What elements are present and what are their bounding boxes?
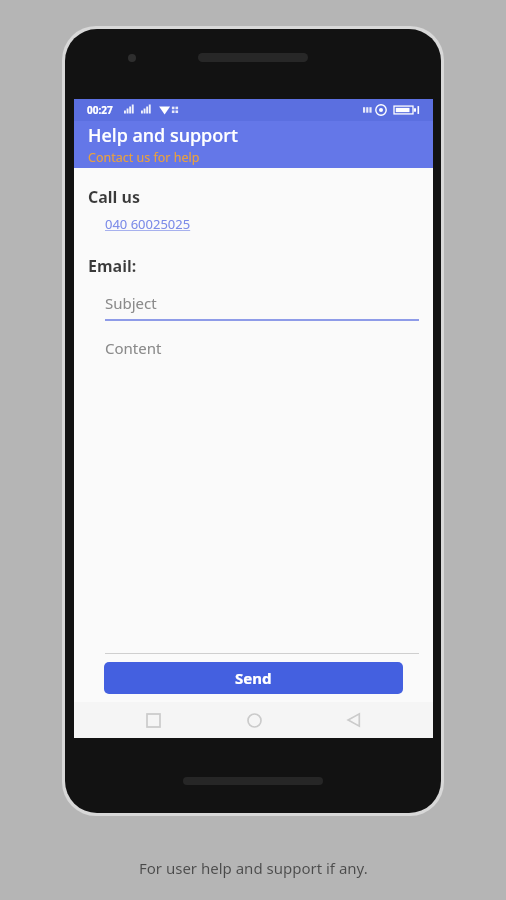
- button[interactable]: Content: [105, 338, 419, 653]
- button[interactable]: Subject: [105, 293, 419, 321]
- button[interactable]: Send: [104, 662, 403, 694]
- button[interactable]: Back: [332, 702, 376, 738]
- staticText: Email:: [88, 255, 137, 277]
- staticText: Subject: [105, 293, 157, 313]
- staticText: Help and support: [88, 123, 238, 148]
- button[interactable]: 040 60025025: [105, 215, 191, 233]
- staticText: 040 60025025: [105, 215, 191, 233]
- staticText: Send: [235, 668, 272, 688]
- button[interactable]: Home: [232, 702, 276, 738]
- staticText: For user help and support if any.: [139, 858, 368, 878]
- staticText: Content: [105, 338, 162, 358]
- staticText: Call us: [88, 186, 140, 208]
- staticText: 00:27: [87, 103, 113, 117]
- staticText: Contact us for help: [88, 149, 200, 166]
- button[interactable]: Recent apps: [131, 702, 175, 738]
